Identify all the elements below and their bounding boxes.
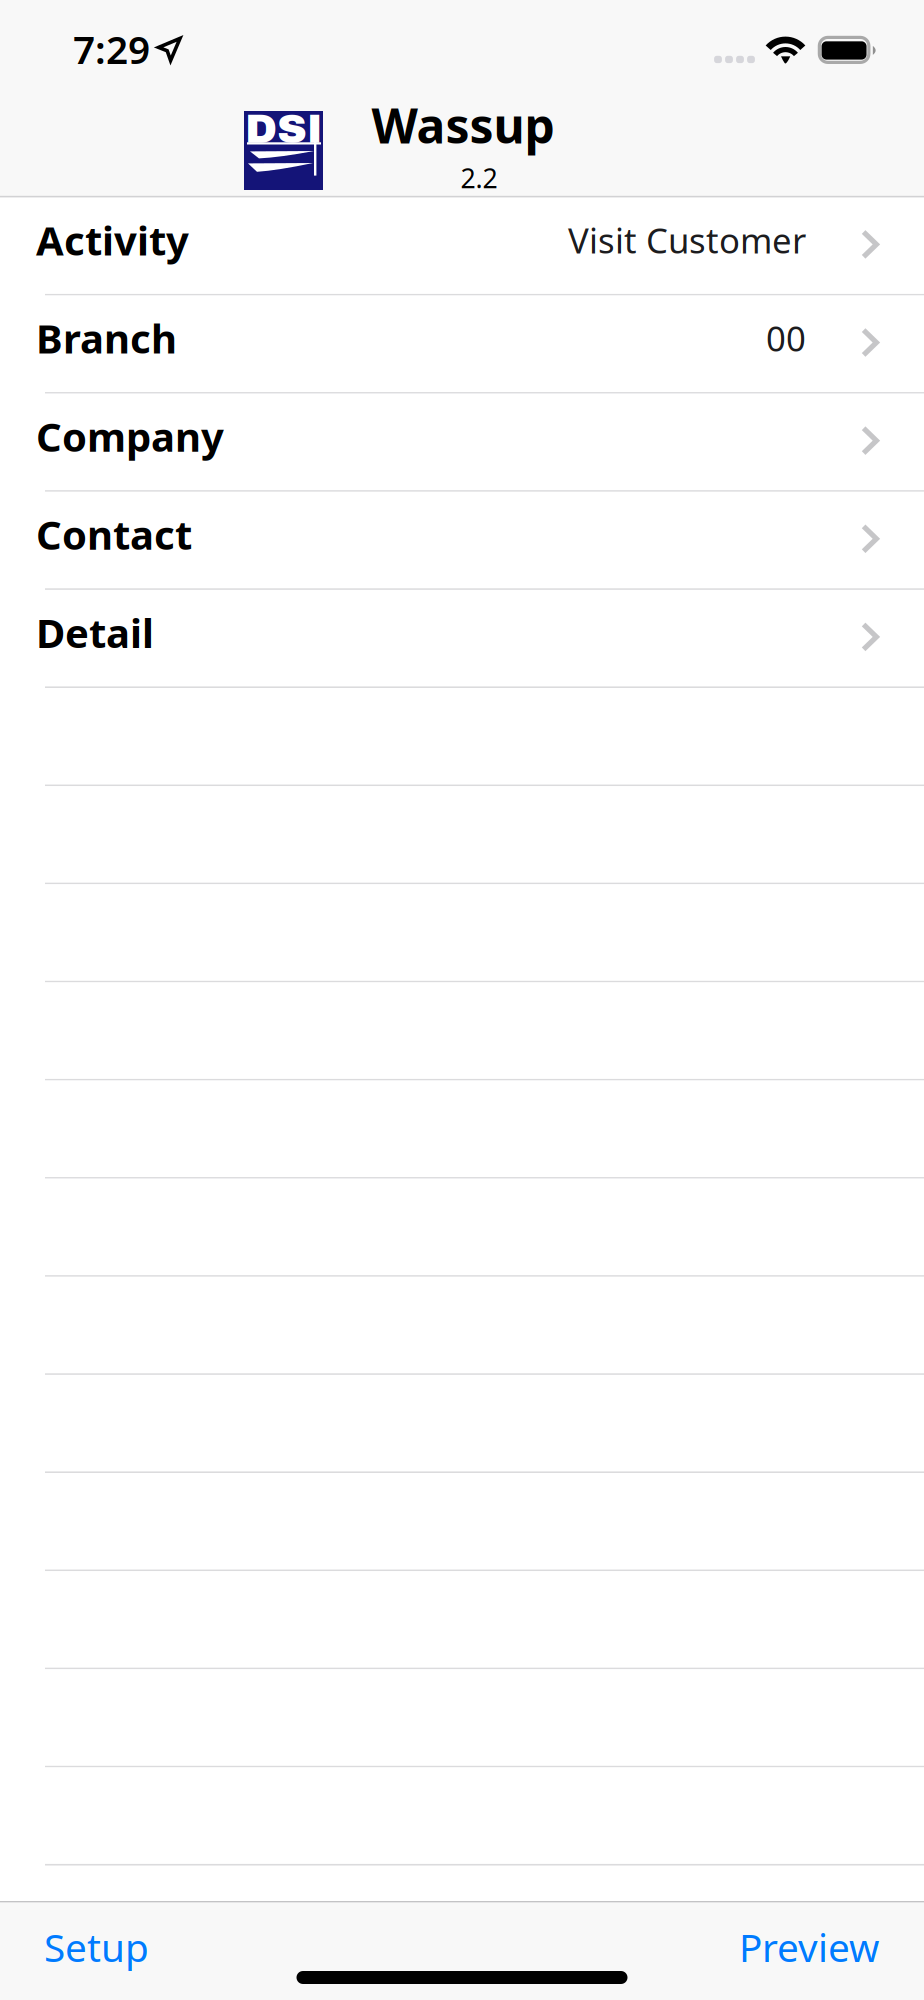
staticText: Contact — [36, 508, 192, 561]
staticText: Company — [36, 410, 224, 463]
staticText: Wassup — [371, 93, 554, 157]
staticText: Visit Customer — [568, 217, 806, 263]
button[interactable]: Contact — [0, 492, 924, 590]
button[interactable]: Detail — [0, 590, 924, 688]
staticText: Detail — [36, 606, 154, 659]
staticText: Setup — [44, 1921, 149, 1973]
staticText: DSI — [245, 106, 322, 151]
staticText: 00 — [766, 315, 806, 361]
button[interactable]: Branch — [0, 295, 924, 394]
button[interactable]: Activity — [0, 197, 924, 295]
button[interactable]: Preview — [729, 1921, 889, 1973]
staticText: Branch — [36, 311, 177, 365]
button[interactable]: Company — [0, 394, 924, 492]
staticText: Preview — [739, 1921, 879, 1973]
button[interactable]: Setup — [34, 1921, 159, 1973]
staticText: Activity — [36, 213, 189, 266]
staticText: 7:29 — [73, 23, 150, 75]
staticText: 2.2 — [460, 160, 497, 196]
